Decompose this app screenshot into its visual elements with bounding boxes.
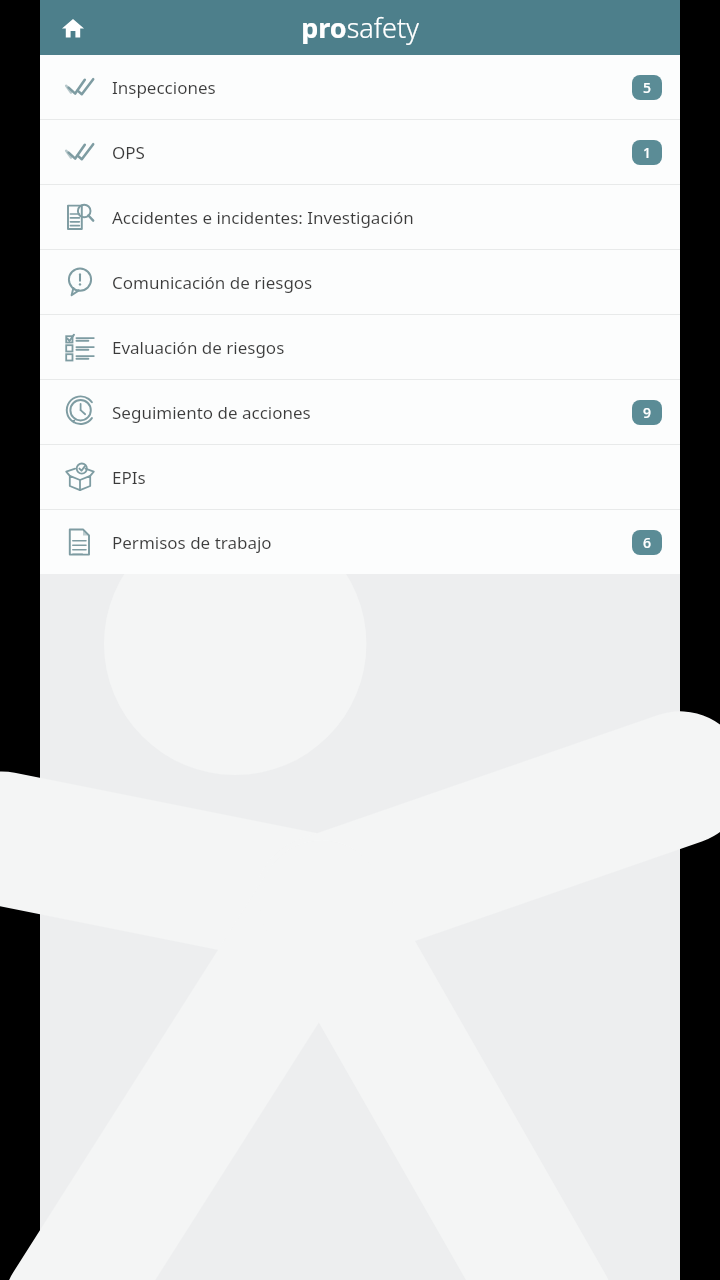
staticText: Seguimiento de acciones bbox=[112, 401, 632, 424]
button[interactable]: Comunicación de riesgos bbox=[40, 250, 680, 314]
staticText: Comunicación de riesgos bbox=[112, 271, 632, 294]
button[interactable]: Accidentes e incidentes: Investigación bbox=[40, 185, 680, 249]
staticText: EPIs bbox=[112, 466, 632, 489]
staticText: Evaluación de riesgos bbox=[112, 336, 632, 359]
staticText: prosafety bbox=[301, 9, 419, 46]
button[interactable]: Seguimiento de acciones bbox=[40, 380, 680, 444]
staticText: OPS bbox=[112, 141, 632, 164]
button[interactable]: Evaluación de riesgos bbox=[40, 315, 680, 379]
staticText: 1 bbox=[643, 143, 652, 162]
button[interactable]: Inspecciones bbox=[40, 55, 680, 119]
button[interactable]: OPS bbox=[40, 120, 680, 184]
staticText: 9 bbox=[643, 403, 652, 422]
staticText: 6 bbox=[643, 533, 652, 552]
button[interactable]: EPIs bbox=[40, 445, 680, 509]
staticText: Accidentes e incidentes: Investigación bbox=[112, 206, 632, 229]
button[interactable]: Permisos de trabajo bbox=[40, 510, 680, 574]
staticText: Inspecciones bbox=[112, 76, 632, 99]
button[interactable]: Home bbox=[49, 4, 97, 52]
staticText: 5 bbox=[643, 78, 652, 97]
staticText: Permisos de trabajo bbox=[112, 531, 632, 554]
